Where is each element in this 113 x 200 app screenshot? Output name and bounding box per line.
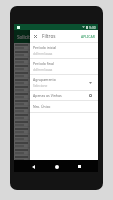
- button[interactable]: Nro. Único: [30, 101, 98, 113]
- staticText: Apenas as Vinhas: [33, 93, 89, 98]
- button[interactable]: Close: [32, 33, 39, 40]
- staticText: dd/mm/aaaa: [33, 68, 53, 72]
- button[interactable]: Período final: [30, 59, 98, 75]
- staticText: dd/mm/aaaa: [33, 52, 53, 56]
- staticText: Agrupamento: [33, 77, 56, 82]
- staticText: Filtros: [42, 33, 56, 39]
- staticText: Período final: [33, 61, 54, 66]
- button[interactable]: Home: [52, 162, 61, 171]
- staticText: Nro. Único: [33, 104, 51, 109]
- button[interactable]: Back: [29, 162, 38, 171]
- button[interactable]: Período inicial: [30, 43, 98, 59]
- staticText: 9:30: [89, 25, 96, 29]
- button[interactable]: APLICAR: [80, 32, 96, 41]
- staticText: Período inicial: [33, 45, 57, 50]
- button[interactable]: Apenas as Vinhas: [30, 91, 98, 101]
- staticText: Solicitações: [17, 34, 43, 40]
- staticText: Selecione: [33, 84, 48, 88]
- button[interactable]: Agrupamento: [30, 75, 98, 91]
- staticText: APLICAR: [81, 34, 95, 39]
- button[interactable]: Recent apps: [75, 162, 84, 171]
